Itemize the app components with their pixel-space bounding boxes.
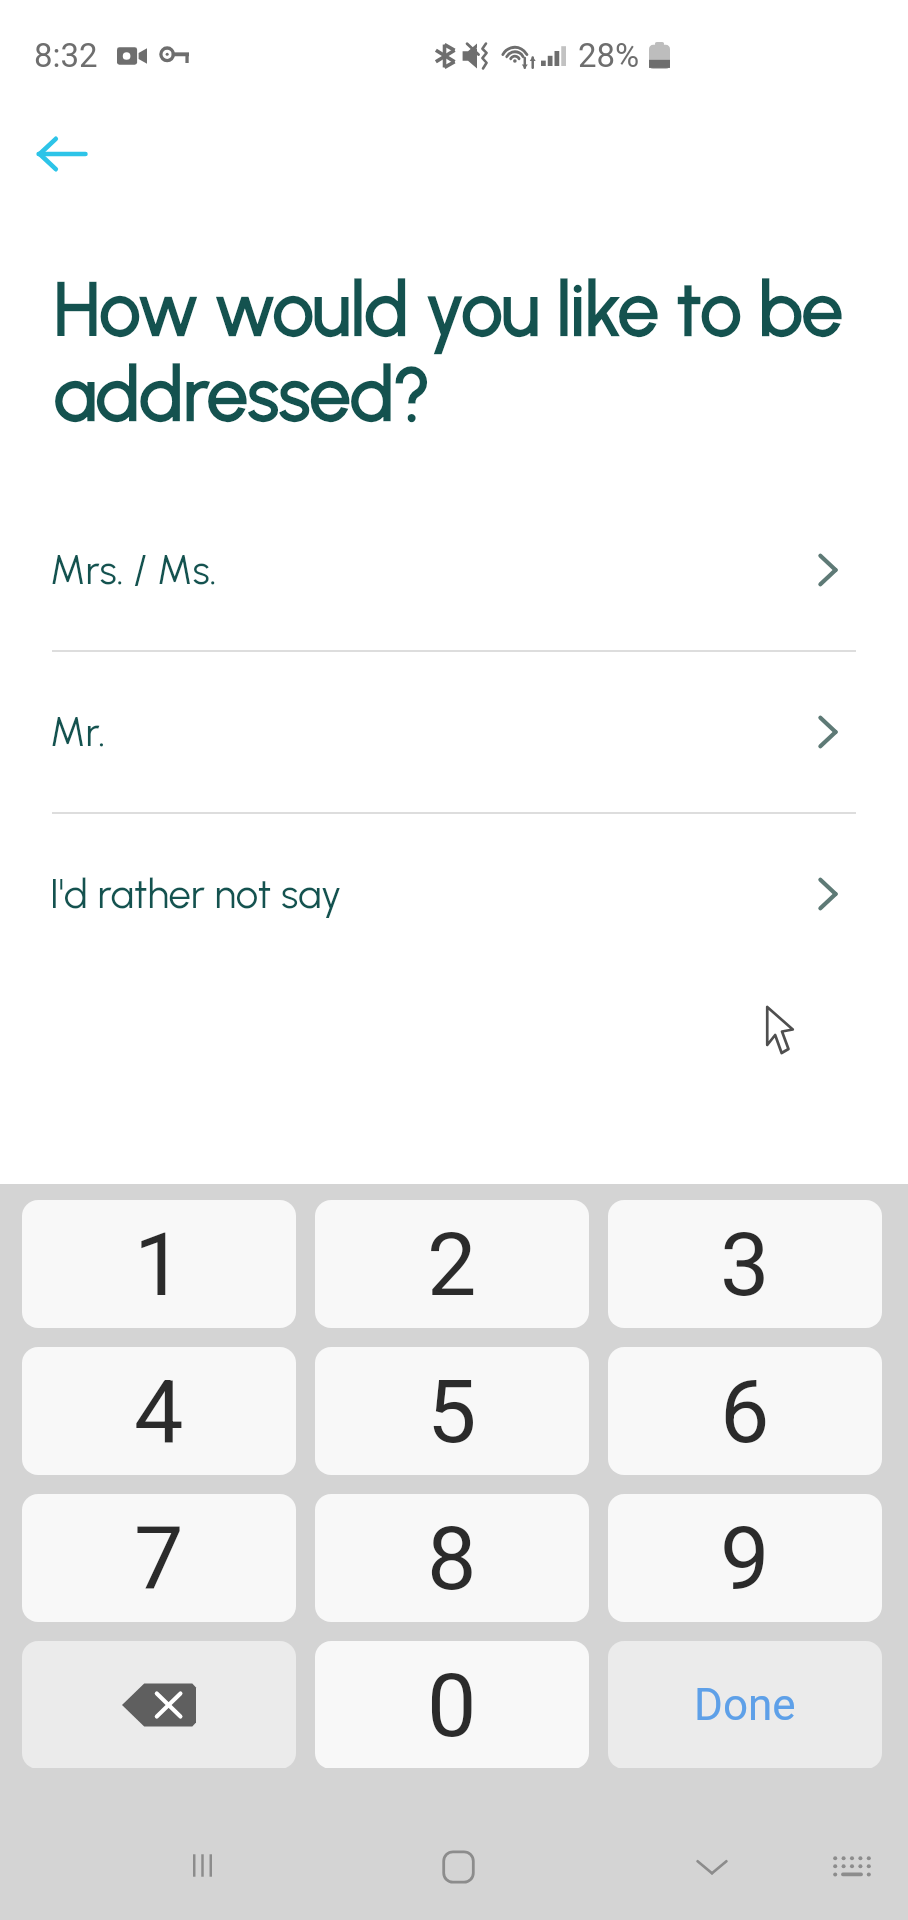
staticText: 7	[134, 1507, 184, 1610]
button[interactable]: 7	[22, 1494, 296, 1622]
staticText: 8	[427, 1507, 477, 1610]
staticText: 0	[427, 1654, 477, 1757]
staticText: 28%	[578, 36, 640, 75]
staticText: 2	[427, 1213, 477, 1316]
button[interactable]: Mrs. / Ms.	[0, 490, 908, 650]
staticText: How would you like to be addressed?	[54, 266, 843, 439]
staticText: 6	[720, 1360, 770, 1463]
button[interactable]: 0	[315, 1641, 589, 1769]
staticText: Mrs. / Ms.	[50, 546, 217, 594]
button[interactable]: Home	[406, 1824, 511, 1910]
staticText: 1	[134, 1213, 184, 1316]
button[interactable]: Backspace	[22, 1641, 296, 1769]
button[interactable]: Mr.	[0, 652, 908, 812]
staticText: Mr.	[50, 708, 106, 756]
staticText: Done	[694, 1679, 796, 1731]
button[interactable]: 8	[315, 1494, 589, 1622]
button[interactable]: 2	[315, 1200, 589, 1328]
button[interactable]: Switch keyboard	[797, 1827, 907, 1905]
button[interactable]: 9	[608, 1494, 882, 1622]
button[interactable]: 6	[608, 1347, 882, 1475]
button[interactable]: 5	[315, 1347, 589, 1475]
button[interactable]: 3	[608, 1200, 882, 1328]
staticText: 8:32	[34, 36, 98, 75]
staticText: 3	[720, 1213, 770, 1316]
staticText: 4	[134, 1360, 184, 1463]
button[interactable]: I'd rather not say	[0, 814, 908, 974]
staticText: 5	[427, 1360, 477, 1463]
button[interactable]: Done	[608, 1641, 882, 1769]
button[interactable]: Recents	[152, 1825, 253, 1906]
button[interactable]: Back	[11, 104, 111, 204]
staticText: 9	[720, 1507, 770, 1610]
button[interactable]: 1	[22, 1200, 296, 1328]
button[interactable]: Hide keyboard	[660, 1830, 764, 1904]
button[interactable]: 4	[22, 1347, 296, 1475]
staticText: I'd rather not say	[50, 870, 342, 918]
